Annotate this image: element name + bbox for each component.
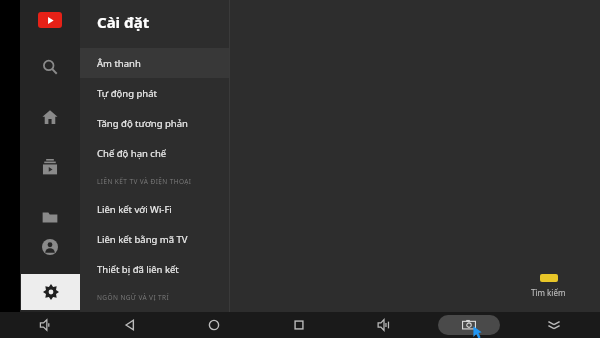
button[interactable]: Âm thanh	[80, 48, 230, 78]
staticText: LIÊN KẾT TV VÀ ĐIỆN THOẠI	[97, 177, 192, 186]
staticText: Chế độ hạn chế	[97, 147, 167, 160]
button[interactable]: Expand	[511, 312, 596, 338]
button[interactable]: Chế độ hạn chế	[80, 138, 230, 168]
button[interactable]: Tăng độ tương phản	[80, 108, 230, 138]
button[interactable]: Volume up	[341, 312, 426, 338]
button[interactable]: Library	[35, 202, 65, 232]
button[interactable]: Account	[35, 232, 65, 262]
staticText: Cài đặt	[97, 12, 150, 32]
button[interactable]: Subscriptions	[35, 152, 65, 182]
staticText: Âm thanh	[97, 57, 141, 70]
button[interactable]: Screenshot	[438, 315, 500, 335]
button[interactable]: Liên kết với Wi-Fi	[80, 194, 230, 224]
button[interactable]: Home	[172, 312, 256, 338]
staticText: Tăng độ tương phản	[97, 117, 188, 130]
button[interactable]: Search	[35, 52, 65, 82]
staticText: NGÔN NGỮ VÀ VỊ TRÍ	[97, 293, 170, 302]
staticText: Tự động phát	[97, 87, 157, 100]
button[interactable]: Recents	[256, 312, 341, 338]
button[interactable]: Liên kết bằng mã TV	[80, 224, 230, 254]
button[interactable]: Tự động phát	[80, 78, 230, 108]
button[interactable]: Thiết bị đã liên kết	[80, 254, 230, 284]
button[interactable]: Volume down	[4, 312, 88, 338]
button[interactable]: Settings	[21, 274, 80, 310]
button[interactable]: YouTube	[38, 12, 62, 28]
button[interactable]: Back	[88, 312, 172, 338]
staticText: Thiết bị đã liên kết	[97, 263, 179, 276]
staticText: Liên kết bằng mã TV	[97, 233, 188, 246]
button[interactable]: Tìm kiếm	[531, 274, 566, 298]
staticText: Tìm kiếm	[531, 287, 566, 298]
staticText: Liên kết với Wi-Fi	[97, 203, 172, 216]
button[interactable]: Home	[35, 102, 65, 132]
